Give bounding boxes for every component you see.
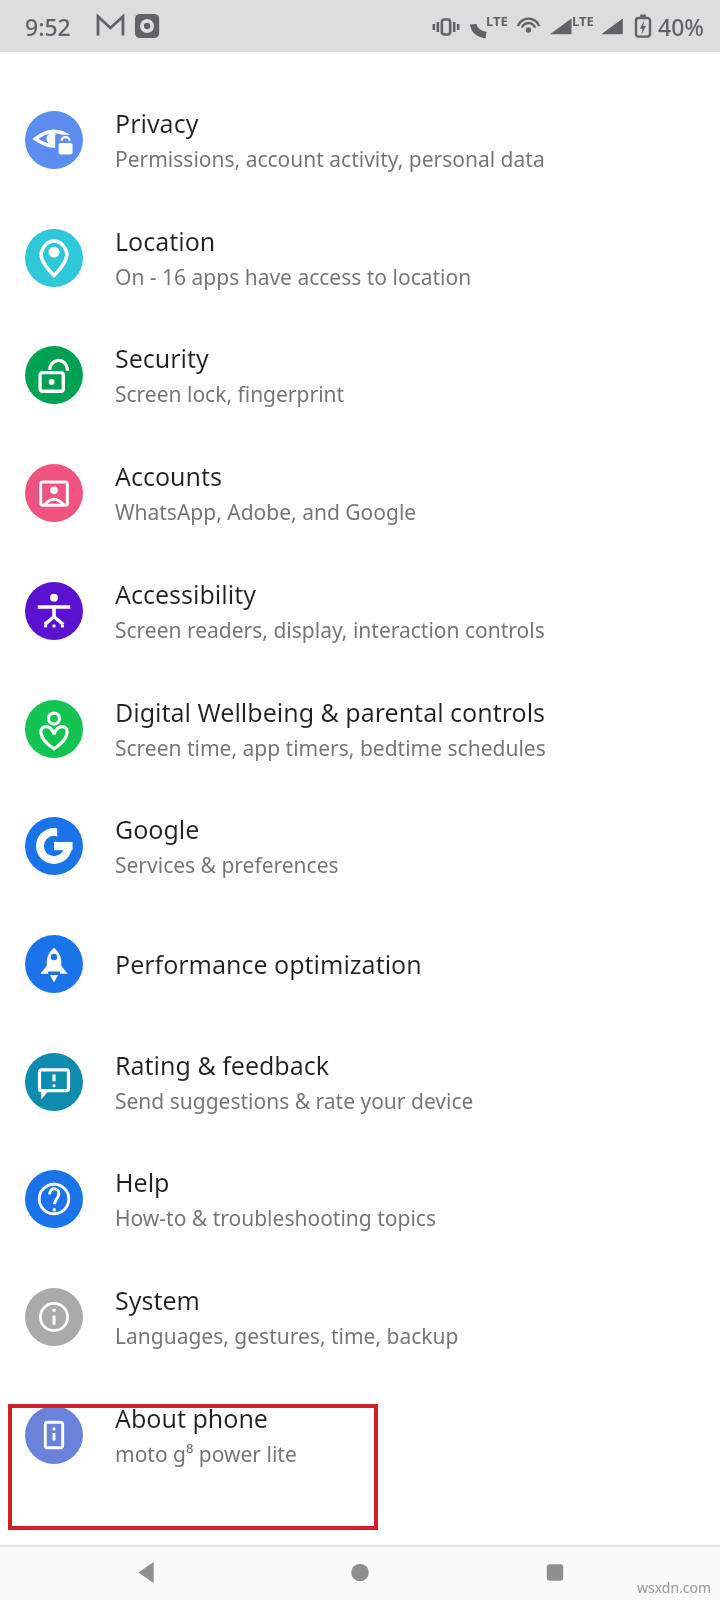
staticText: wsxdn.com	[637, 1578, 712, 1597]
button[interactable]: Privacy	[0, 87, 720, 193]
button[interactable]: Security	[0, 322, 720, 428]
staticText: Screen readers, display, interaction con…	[115, 616, 545, 645]
button[interactable]: Performance optimization	[0, 911, 720, 1017]
button[interactable]: System	[0, 1264, 720, 1370]
staticText: 40%	[658, 11, 704, 42]
staticText: Google	[115, 812, 200, 846]
staticText: Send suggestions & rate your device	[115, 1087, 474, 1116]
staticText: LTE	[486, 12, 508, 30]
button[interactable]: Location	[0, 205, 720, 311]
staticText: Permissions, account activity, personal …	[115, 145, 545, 174]
staticText: Performance optimization	[115, 947, 422, 981]
button[interactable]: Recent apps	[524, 1545, 586, 1600]
staticText: On - 16 apps have access to location	[115, 263, 472, 292]
staticText: Screen time, app timers, bedtime schedul…	[115, 734, 546, 763]
staticText: Accessibility	[115, 577, 256, 611]
staticText: LTE	[572, 12, 594, 30]
staticText: moto g⁸ power lite	[115, 1440, 297, 1469]
staticText: About phone	[115, 1401, 268, 1435]
staticText: Location	[115, 224, 216, 258]
button[interactable]: About phone	[0, 1382, 720, 1488]
staticText: Security	[115, 341, 209, 375]
staticText: Languages, gestures, time, backup	[115, 1322, 459, 1351]
staticText: Screen lock, fingerprint	[115, 380, 345, 409]
button[interactable]: Help	[0, 1146, 720, 1252]
staticText: Accounts	[115, 459, 223, 493]
button[interactable]: Home	[329, 1545, 391, 1600]
button[interactable]: Back	[119, 1545, 181, 1600]
button[interactable]: Rating & feedback	[0, 1029, 720, 1135]
button[interactable]: Accounts	[0, 440, 720, 546]
staticText: WhatsApp, Adobe, and Google	[115, 498, 417, 527]
button[interactable]: Google	[0, 793, 720, 899]
staticText: Digital Wellbeing & parental controls	[115, 695, 546, 729]
staticText: Help	[115, 1165, 170, 1199]
staticText: System	[115, 1283, 200, 1317]
staticText: How-to & troubleshooting topics	[115, 1204, 436, 1233]
button[interactable]: Accessibility	[0, 558, 720, 664]
button[interactable]: Digital Wellbeing & parental controls	[0, 676, 720, 782]
staticText: Rating & feedback	[115, 1048, 330, 1082]
staticText: Services & preferences	[115, 851, 339, 880]
staticText: Privacy	[115, 106, 199, 140]
staticText: 9:52	[25, 11, 71, 42]
